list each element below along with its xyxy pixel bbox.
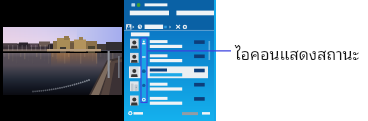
staticText: ไอคอนแสดงสถานะ xyxy=(235,40,360,66)
